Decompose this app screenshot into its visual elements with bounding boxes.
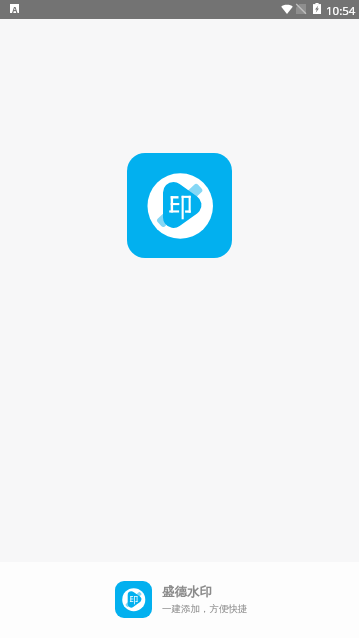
staticText: 10:54	[326, 3, 356, 19]
button[interactable]: 盛德水印	[115, 581, 248, 618]
staticText: A	[12, 4, 18, 13]
staticText: 一建添加，方便快捷	[162, 603, 248, 615]
button[interactable]	[127, 153, 232, 258]
staticText: 盛德水印	[162, 584, 212, 600]
